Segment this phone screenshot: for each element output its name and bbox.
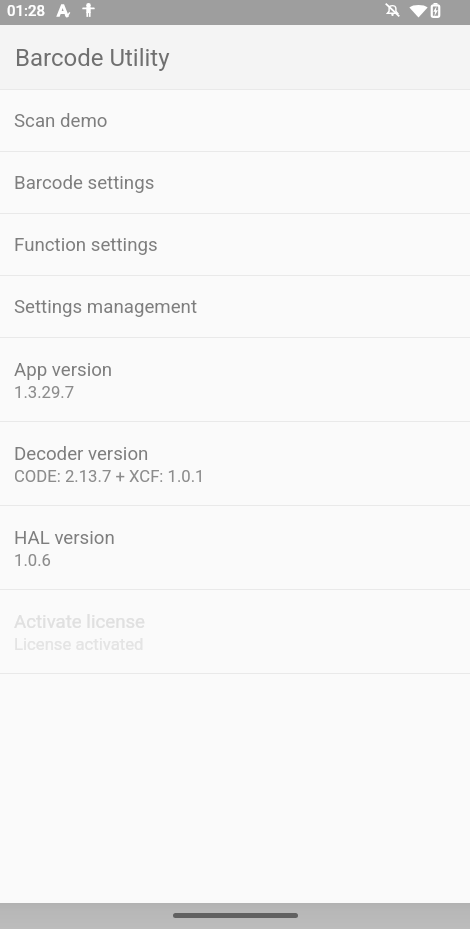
staticText: CODE: 2.13.7 + XCF: 1.0.1 (14, 467, 205, 487)
staticText: Scan demo (14, 110, 108, 132)
button[interactable]: Settings management (0, 276, 470, 338)
staticText: 1.3.29.7 (14, 383, 75, 403)
staticText: Function settings (14, 234, 158, 256)
staticText: 1.0.6 (14, 551, 51, 571)
button[interactable]: HAL version (0, 506, 470, 590)
button[interactable]: Activate license (0, 590, 470, 674)
button[interactable]: App version (0, 338, 470, 422)
button[interactable]: Function settings (0, 214, 470, 276)
staticText: Settings management (14, 296, 198, 318)
staticText: Barcode settings (14, 172, 155, 194)
staticText: HAL version (14, 527, 115, 549)
staticText: 01:28 (7, 2, 46, 20)
staticText: License activated (14, 635, 144, 655)
staticText: Activate license (14, 611, 146, 633)
staticText: Decoder version (14, 443, 149, 465)
staticText: Barcode Utility (15, 44, 170, 72)
button[interactable]: Decoder version (0, 422, 470, 506)
staticText: App version (14, 359, 113, 381)
button[interactable]: Barcode settings (0, 152, 470, 214)
button[interactable]: Scan demo (0, 90, 470, 152)
